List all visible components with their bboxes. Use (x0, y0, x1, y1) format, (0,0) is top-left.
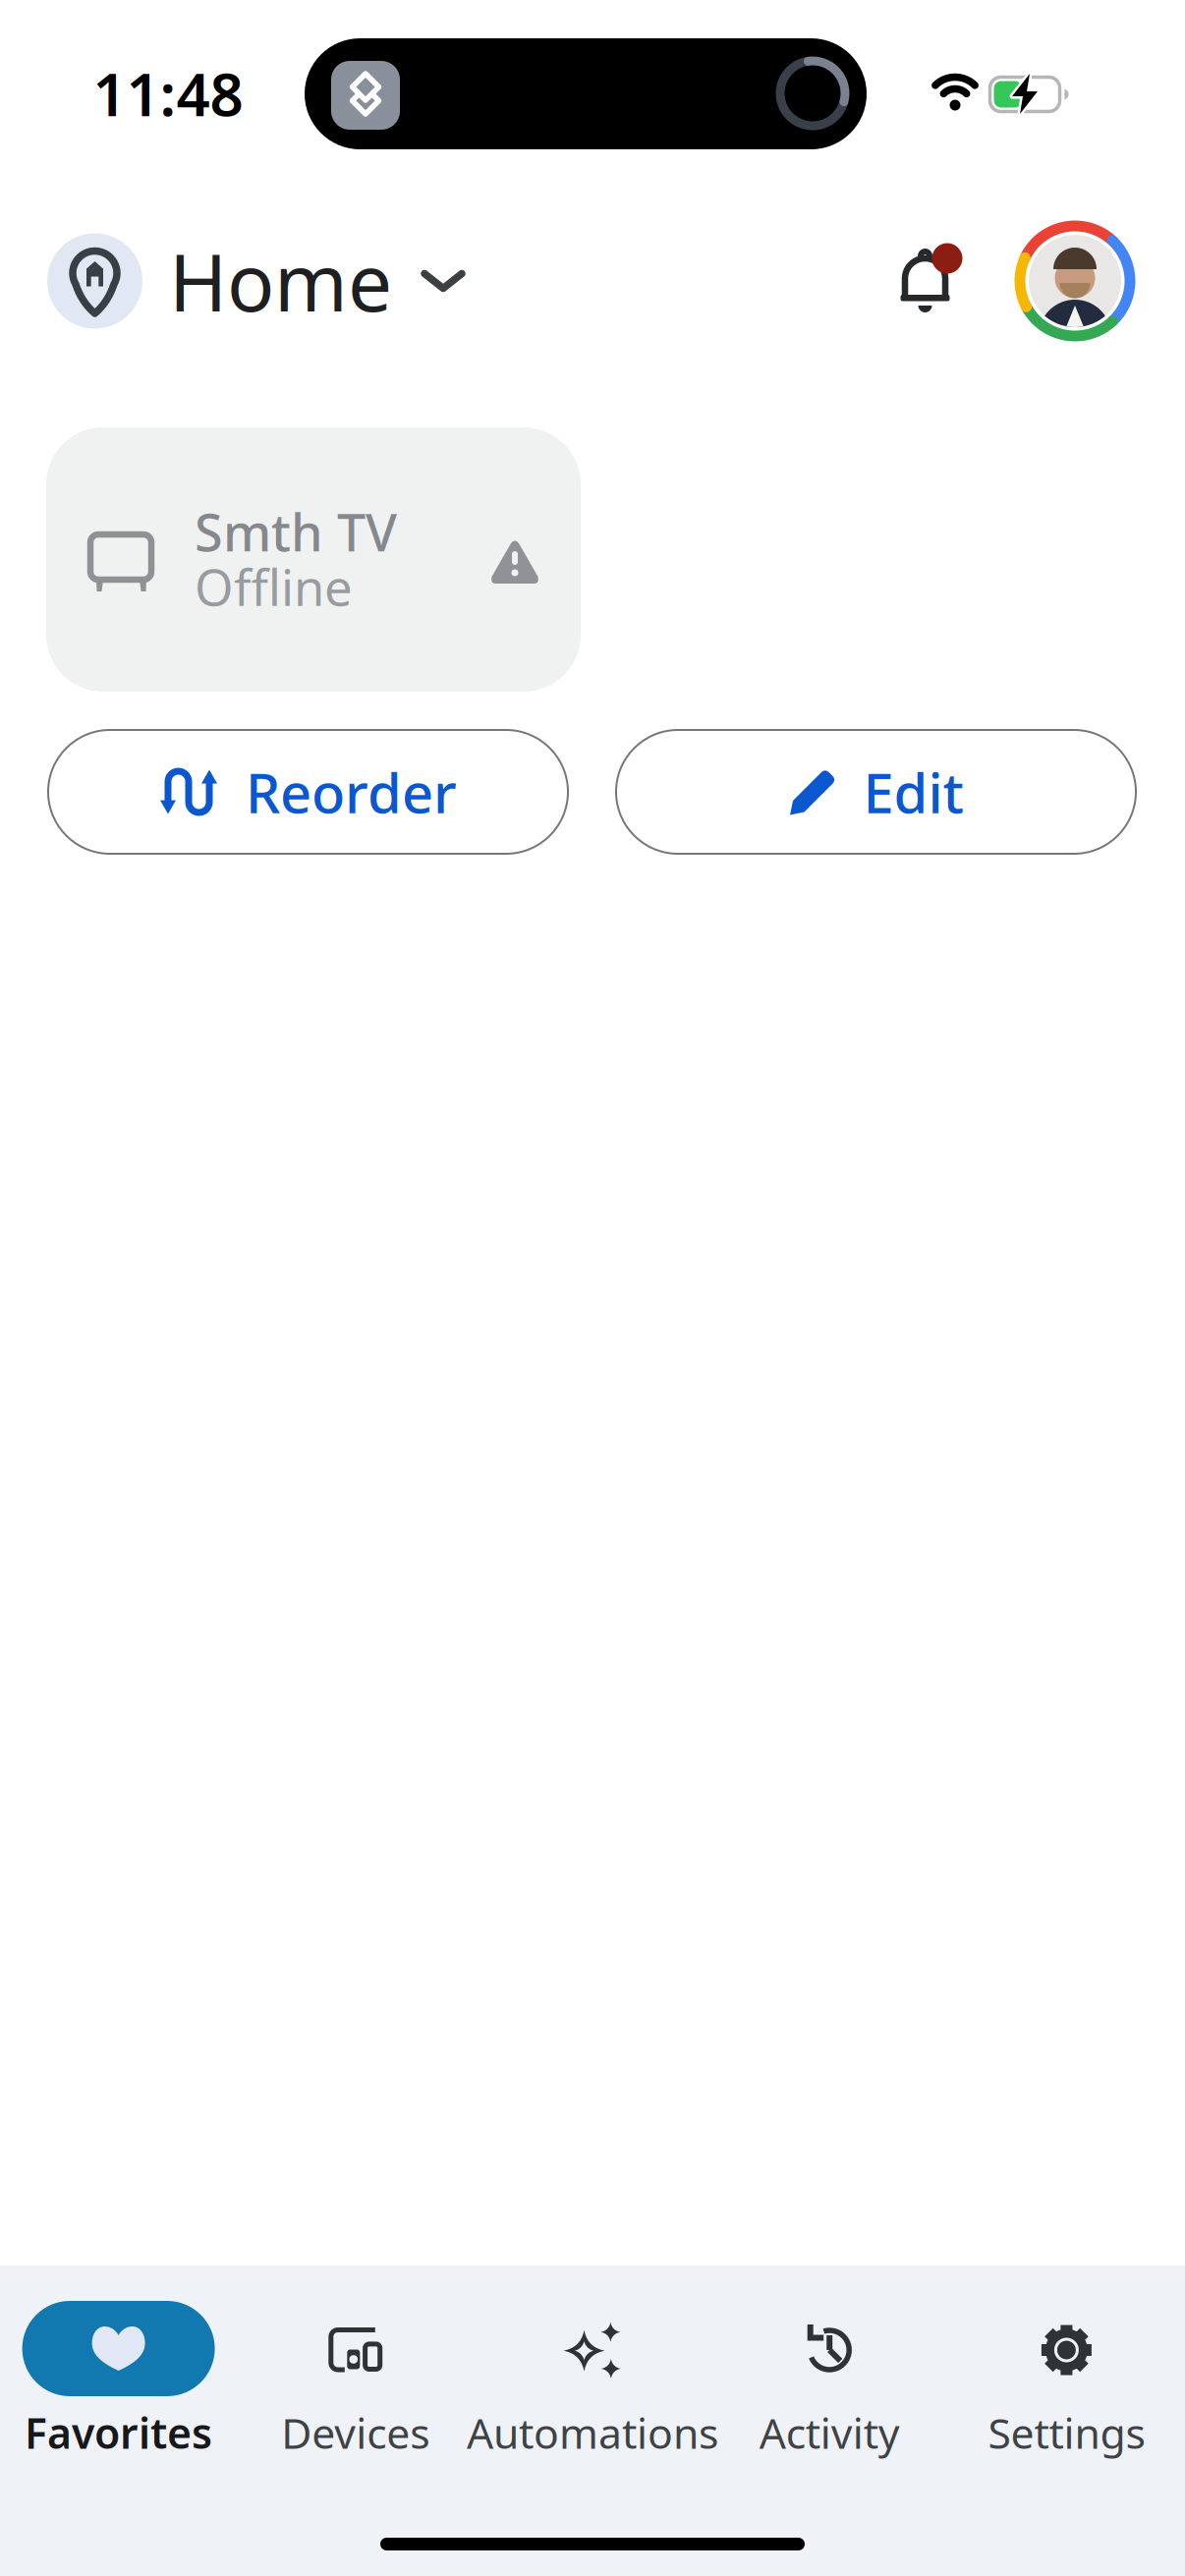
staticText: Reorder (246, 755, 457, 828)
button[interactable]: Home (47, 233, 597, 329)
button[interactable]: Favorites (0, 2279, 237, 2466)
staticText: Favorites (25, 2405, 212, 2460)
button[interactable]: Activity (711, 2279, 948, 2466)
staticText: Offline (195, 554, 353, 620)
button[interactable]: Settings (948, 2279, 1185, 2466)
staticText: Devices (281, 2405, 430, 2460)
staticText: Smth TV (195, 498, 397, 566)
button[interactable]: Smth TV (46, 427, 581, 692)
staticText: Edit (863, 755, 963, 828)
staticText: 11:48 (93, 54, 243, 133)
staticText: Automations (467, 2405, 718, 2460)
button[interactable]: Notifications (879, 229, 978, 327)
staticText: Activity (759, 2405, 900, 2460)
staticText: Home (169, 229, 392, 333)
staticText: Settings (988, 2405, 1145, 2460)
button[interactable]: Automations (474, 2279, 711, 2466)
button[interactable]: Edit (615, 729, 1137, 855)
button[interactable]: Account (1014, 220, 1136, 342)
button[interactable]: Devices (237, 2279, 474, 2466)
button[interactable]: Reorder (47, 729, 569, 855)
